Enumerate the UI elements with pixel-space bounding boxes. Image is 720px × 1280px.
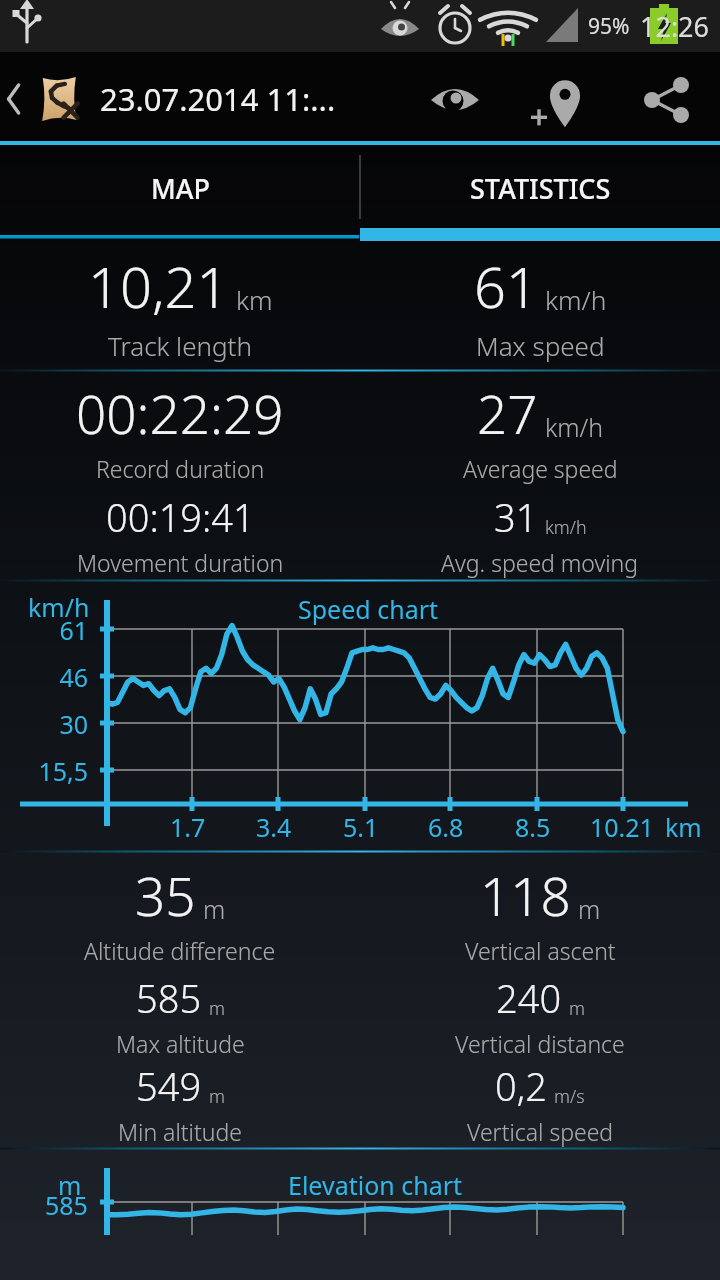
- staticText: Avg. speed moving: [441, 547, 639, 578]
- staticText: Speed chart: [298, 592, 439, 626]
- button[interactable]: 549: [0, 1059, 360, 1147]
- staticText: 00:22:29: [76, 377, 284, 449]
- staticText: 118: [480, 859, 571, 931]
- staticText: Elevation chart: [288, 1168, 463, 1202]
- staticText: 35: [135, 859, 196, 931]
- staticText: m: [578, 892, 601, 926]
- staticText: 240: [496, 972, 562, 1024]
- staticText: 8.5: [515, 810, 551, 844]
- button[interactable]: Show on map: [402, 52, 508, 145]
- button[interactable]: 10,21: [0, 241, 360, 369]
- staticText: 27: [477, 377, 538, 449]
- staticText: m: [58, 1168, 82, 1202]
- button[interactable]: MAP: [0, 145, 360, 241]
- staticText: Track length: [108, 328, 252, 363]
- button[interactable]: Navigate up: [0, 52, 402, 145]
- staticText: km/h: [545, 282, 607, 318]
- staticText: km/h: [545, 410, 604, 444]
- staticText: Vertical speed: [467, 1116, 614, 1147]
- staticText: 1.7: [170, 810, 206, 844]
- staticText: 585: [136, 972, 202, 1024]
- staticText: 30: [59, 707, 88, 741]
- staticText: km: [236, 282, 273, 318]
- button[interactable]: 118: [360, 853, 720, 971]
- button[interactable]: STATISTICS: [360, 145, 720, 241]
- button[interactable]: 35: [0, 853, 360, 971]
- staticText: 95%: [588, 12, 630, 41]
- staticText: Record duration: [96, 453, 265, 484]
- staticText: m/s: [554, 1084, 585, 1108]
- staticText: Vertical distance: [455, 1028, 625, 1059]
- staticText: 46: [59, 660, 88, 694]
- staticText: 10.21: [590, 810, 654, 844]
- staticText: 12:26: [640, 8, 710, 45]
- staticText: m: [209, 996, 225, 1020]
- staticText: Average speed: [463, 453, 618, 484]
- staticText: 61: [59, 613, 88, 647]
- button[interactable]: 27: [360, 372, 720, 489]
- staticText: 5.1: [343, 810, 379, 844]
- staticText: Min altitude: [118, 1116, 242, 1147]
- staticText: m: [203, 892, 226, 926]
- staticText: 23.07.2014 11:...: [100, 78, 336, 120]
- staticText: 3.4: [256, 810, 292, 844]
- button[interactable]: 240: [360, 971, 720, 1059]
- staticText: 585: [45, 1188, 88, 1222]
- staticText: 15,5: [38, 754, 88, 788]
- staticText: 6.8: [428, 810, 464, 844]
- button[interactable]: 31: [360, 489, 720, 579]
- button[interactable]: 61: [360, 241, 720, 369]
- staticText: STATISTICS: [470, 170, 611, 207]
- staticText: km/h: [28, 590, 90, 624]
- staticText: MAP: [151, 170, 210, 207]
- staticText: m: [569, 996, 585, 1020]
- button[interactable]: 0,2: [360, 1059, 720, 1147]
- button[interactable]: 00:19:41: [0, 489, 360, 579]
- staticText: m: [209, 1084, 225, 1108]
- button[interactable]: 585: [0, 971, 360, 1059]
- staticText: 00:19:41: [106, 491, 255, 543]
- button[interactable]: 00:22:29: [0, 372, 360, 489]
- staticText: km: [665, 810, 702, 844]
- button[interactable]: Share: [614, 52, 720, 145]
- staticText: Altitude difference: [84, 935, 276, 966]
- staticText: 31: [494, 491, 538, 543]
- staticText: Max speed: [476, 328, 605, 363]
- staticText: Movement duration: [77, 547, 284, 578]
- staticText: 10,21: [88, 248, 229, 324]
- staticText: 61: [474, 248, 538, 324]
- button[interactable]: Add waypoint: [508, 52, 614, 145]
- staticText: Max altitude: [116, 1028, 245, 1059]
- staticText: Vertical ascent: [465, 935, 616, 966]
- staticText: 549: [136, 1060, 202, 1112]
- staticText: km/h: [545, 515, 587, 539]
- staticText: 0,2: [495, 1060, 547, 1112]
